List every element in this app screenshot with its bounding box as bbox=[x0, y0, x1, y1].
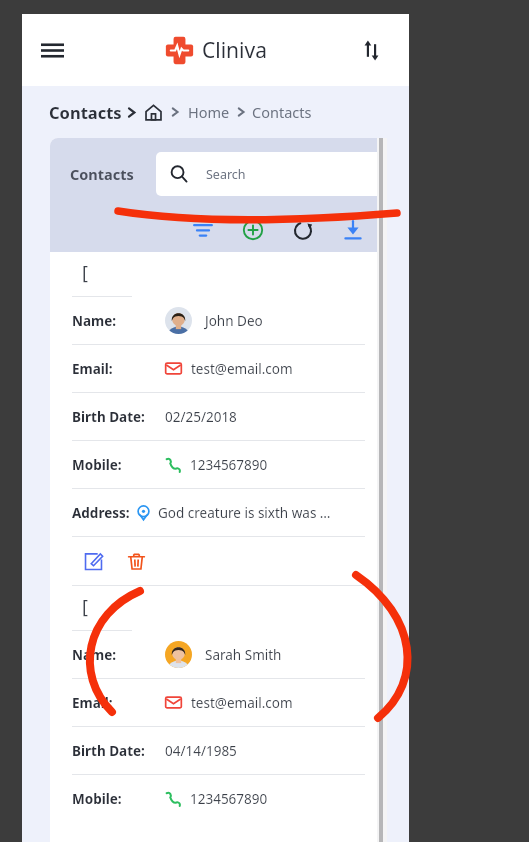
staticText: Contacts bbox=[49, 101, 122, 123]
staticText: 1234567890 bbox=[190, 790, 268, 808]
button[interactable]: Mobile: bbox=[50, 775, 387, 822]
button[interactable]: Refresh bbox=[289, 216, 317, 244]
button[interactable]: Add bbox=[239, 216, 267, 244]
staticText: Name: bbox=[72, 312, 117, 330]
staticText: Birth Date: bbox=[72, 742, 145, 760]
staticText: [ bbox=[82, 594, 88, 619]
staticText: test@email.com bbox=[191, 360, 293, 378]
button[interactable]: Search bbox=[156, 152, 387, 196]
button[interactable]: Edit bbox=[80, 548, 106, 574]
staticText: Address: bbox=[72, 504, 130, 522]
staticText: Mobile: bbox=[72, 790, 122, 808]
button[interactable]: Cliniva bbox=[165, 36, 267, 65]
staticText: Cliniva bbox=[202, 36, 267, 65]
staticText: Mobile: bbox=[72, 456, 122, 474]
staticText: Contacts bbox=[252, 102, 312, 122]
staticText: Email: bbox=[72, 694, 113, 712]
staticText: Birth Date: bbox=[72, 408, 145, 426]
button[interactable]: Download bbox=[339, 216, 367, 244]
staticText: John Deo bbox=[205, 312, 263, 330]
staticText: test@email.com bbox=[191, 694, 293, 712]
button[interactable]: Address: bbox=[72, 489, 387, 536]
button[interactable]: Name: bbox=[50, 297, 387, 344]
button[interactable]: Name: bbox=[50, 631, 387, 678]
button[interactable]: Email: bbox=[50, 345, 387, 392]
staticText: Name: bbox=[72, 646, 117, 664]
button[interactable]: Mobile: bbox=[50, 441, 387, 488]
button[interactable]: Birth Date: bbox=[50, 393, 387, 440]
staticText: Home bbox=[188, 102, 230, 122]
staticText: Contacts bbox=[70, 164, 134, 184]
button[interactable]: Birth Date: bbox=[50, 727, 387, 774]
staticText: [ bbox=[82, 260, 88, 285]
staticText: Search bbox=[206, 166, 246, 183]
staticText: Email: bbox=[72, 360, 113, 378]
button[interactable]: Sort bbox=[351, 30, 391, 70]
button[interactable]: Delete bbox=[123, 548, 149, 574]
staticText: Sarah Smith bbox=[205, 646, 282, 664]
button[interactable]: Home bbox=[145, 104, 162, 121]
staticText: 02/25/2018 bbox=[165, 408, 237, 426]
button[interactable]: Menu bbox=[30, 28, 74, 72]
staticText: God creature is sixth was … bbox=[158, 504, 331, 522]
staticText: 1234567890 bbox=[190, 456, 268, 474]
staticText: 04/14/1985 bbox=[165, 742, 237, 760]
button[interactable]: Filter bbox=[189, 216, 217, 244]
button[interactable]: Email: bbox=[50, 679, 387, 726]
